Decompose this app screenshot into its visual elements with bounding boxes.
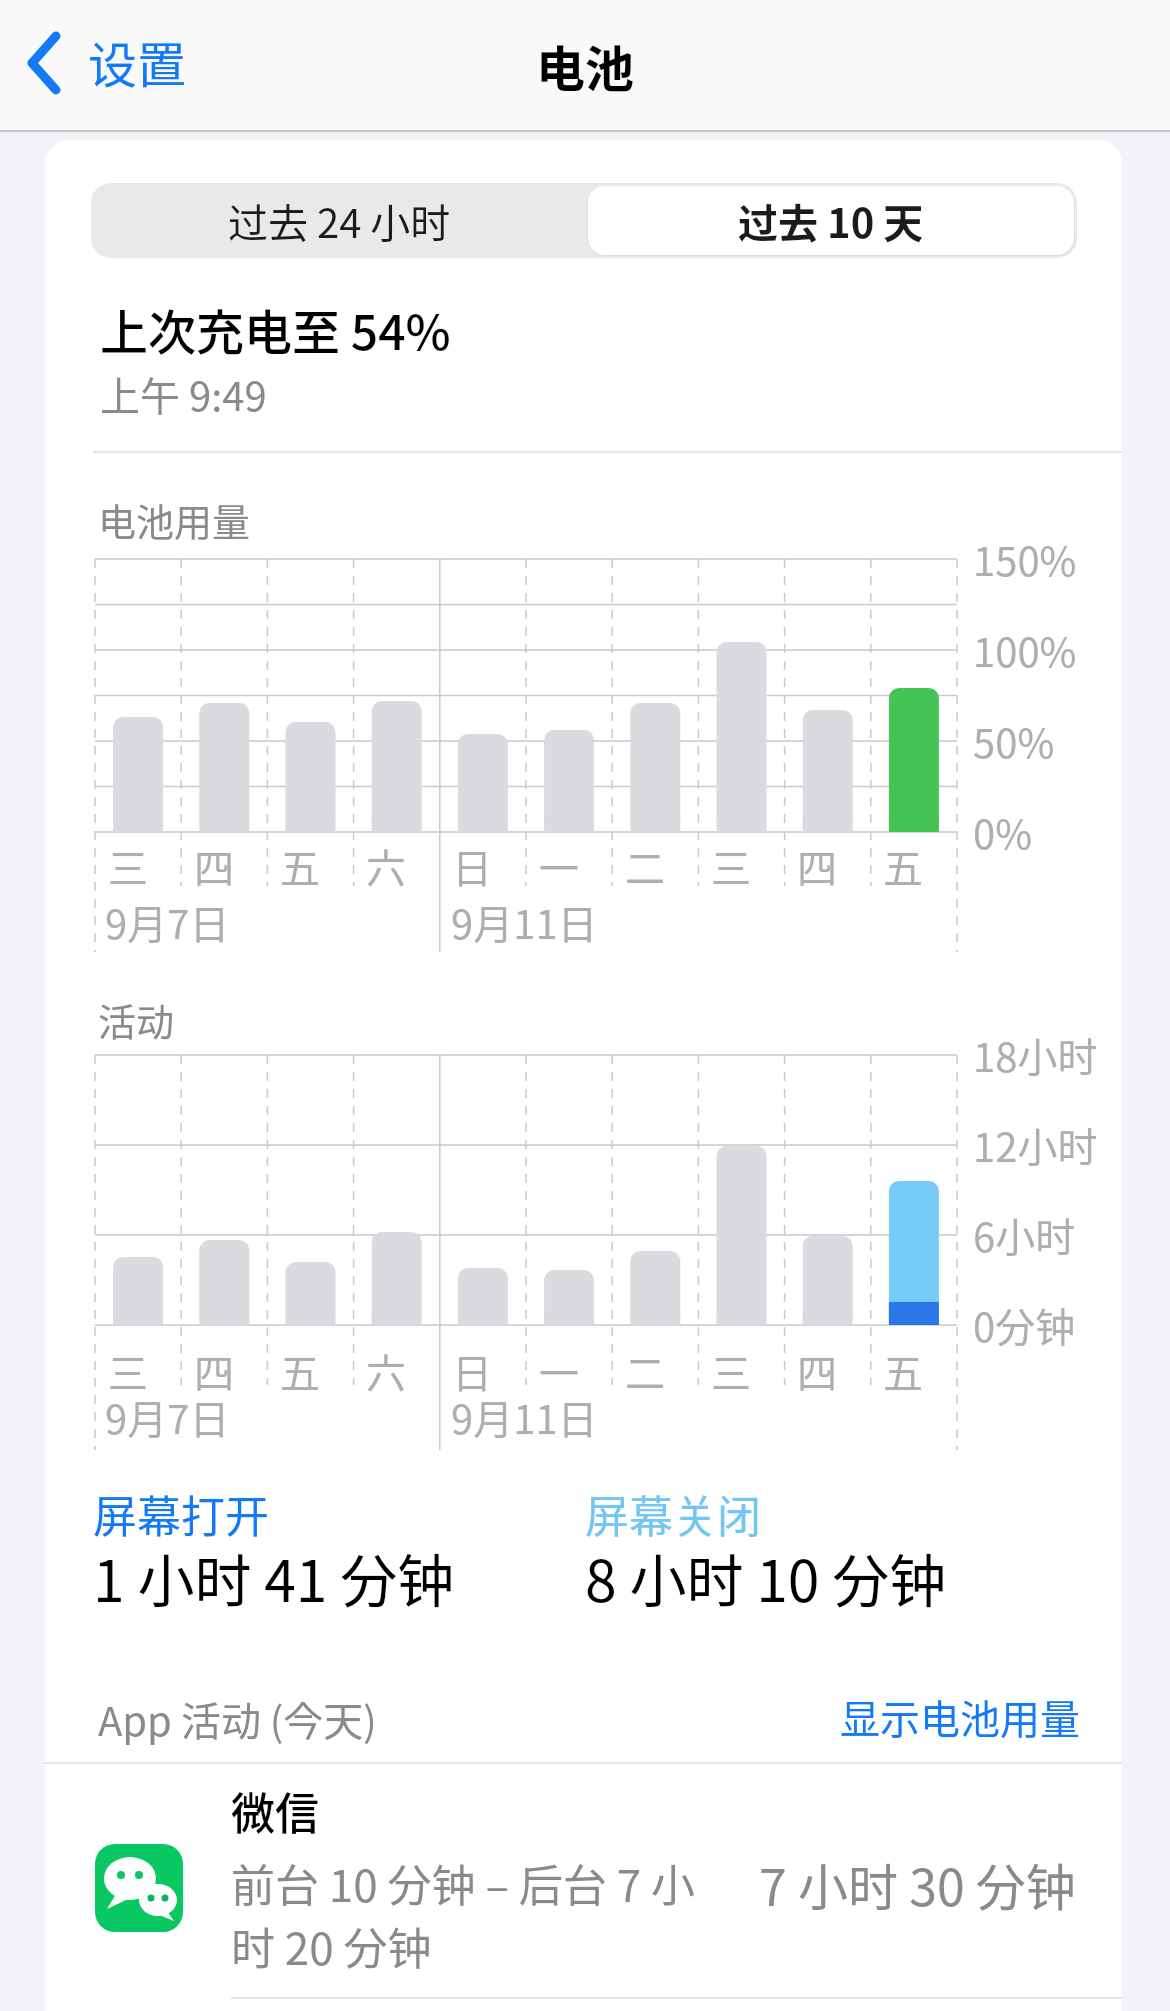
staticText: 微信 <box>231 1779 319 1843</box>
staticText: 过去 24 小时 <box>228 192 451 250</box>
staticText: App 活动 (今天) <box>98 1690 377 1748</box>
staticText: 二 <box>625 1342 665 1400</box>
staticText: 活动 <box>98 992 175 1047</box>
staticText: 上午 9:49 <box>100 365 267 423</box>
staticText: 12小时 <box>973 1116 1098 1174</box>
button[interactable]: 过去 24 小时 <box>91 183 588 258</box>
staticText: 一 <box>539 1342 579 1400</box>
staticText: 屏幕关闭 <box>585 1482 761 1546</box>
staticText: 四 <box>797 1342 837 1400</box>
staticText: 五 <box>280 1342 320 1400</box>
button[interactable] <box>45 1764 1122 2004</box>
staticText: 9月11日 <box>451 893 598 951</box>
staticText: 9月11日 <box>451 1388 598 1446</box>
staticText: 18小时 <box>973 1026 1098 1084</box>
staticText: 0% <box>973 803 1033 861</box>
staticText: 9月7日 <box>105 893 230 951</box>
staticText: 五 <box>280 837 320 895</box>
staticText: 四 <box>194 837 234 895</box>
staticText: 一 <box>539 837 579 895</box>
staticText: 显示电池用量 <box>840 1688 1080 1746</box>
staticText: 四 <box>797 837 837 895</box>
staticText: 设置 <box>88 26 187 97</box>
staticText: 日 <box>452 837 492 895</box>
staticText: 7 小时 30 分钟 <box>759 1848 1076 1920</box>
staticText: 前台 10 分钟 – 后台 7 小 <box>231 1851 695 1915</box>
button[interactable] <box>91 183 1077 258</box>
staticText: 过去 10 天 <box>738 192 924 250</box>
staticText: 100% <box>973 621 1077 679</box>
staticText: 六 <box>366 1342 406 1400</box>
staticText: 三 <box>711 1342 751 1400</box>
staticText: 二 <box>625 837 665 895</box>
staticText: 电池 <box>536 30 635 101</box>
staticText: 50% <box>973 712 1055 770</box>
staticText: 五 <box>883 837 923 895</box>
staticText: 屏幕打开 <box>93 1482 269 1546</box>
staticText: 时 20 分钟 <box>231 1914 432 1978</box>
button[interactable] <box>588 186 1074 255</box>
staticText: 1 小时 41 分钟 <box>93 1536 455 1619</box>
button[interactable]: 显示电池用量 <box>600 1688 1080 1746</box>
staticText: 三 <box>108 1342 148 1400</box>
staticText: 8 小时 10 分钟 <box>585 1536 947 1619</box>
staticText: 9月7日 <box>105 1388 230 1446</box>
button[interactable] <box>20 20 200 110</box>
staticText: 电池用量 <box>98 492 251 547</box>
staticText: 六 <box>366 837 406 895</box>
staticText: 三 <box>711 837 751 895</box>
staticText: 0分钟 <box>973 1296 1076 1354</box>
staticText: 150% <box>973 530 1077 588</box>
staticText: 五 <box>883 1342 923 1400</box>
staticText: 上次充电至 54% <box>100 294 451 364</box>
staticText: 日 <box>452 1342 492 1400</box>
staticText: 三 <box>108 837 148 895</box>
staticText: 四 <box>194 1342 234 1400</box>
staticText: 6小时 <box>973 1206 1076 1264</box>
